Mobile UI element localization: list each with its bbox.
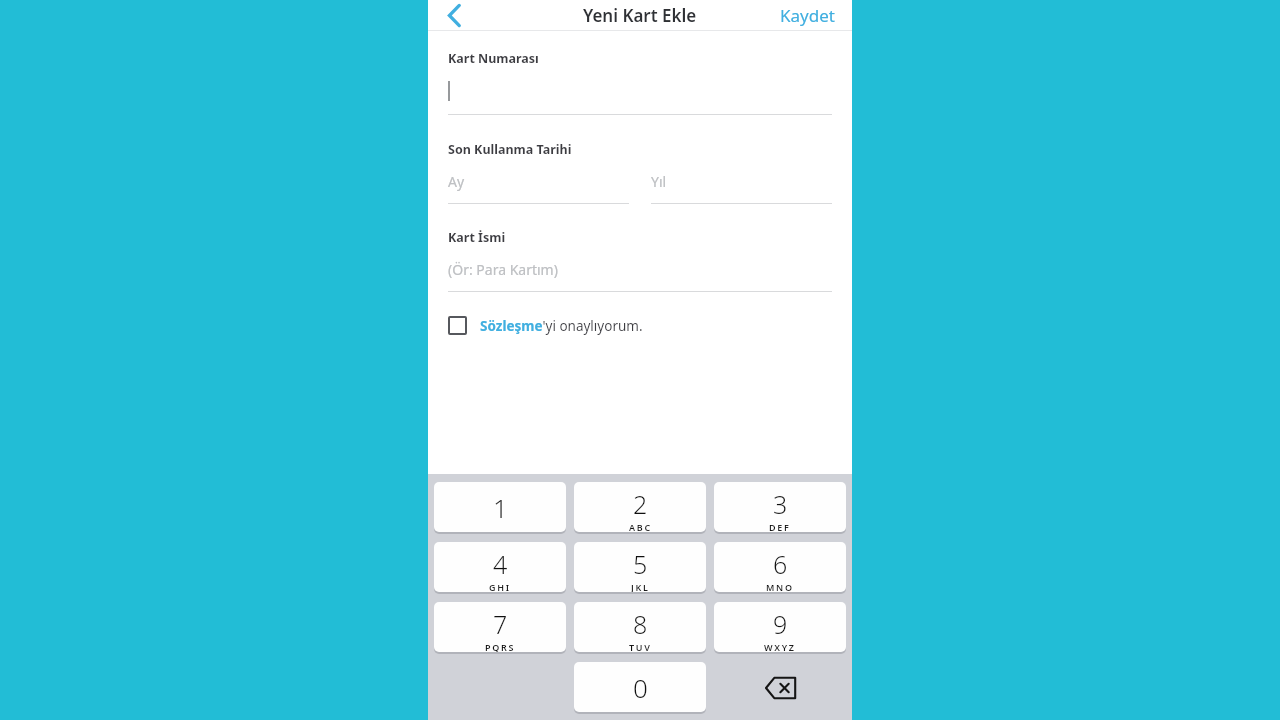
button[interactable]: 4: [434, 542, 566, 592]
staticText: Yıl: [651, 172, 667, 191]
button[interactable]: 9: [714, 602, 846, 652]
button[interactable]: 6: [714, 542, 846, 592]
staticText: 5: [633, 547, 648, 581]
staticText: DEF: [769, 521, 791, 532]
button[interactable]: Yıl: [651, 158, 832, 204]
button[interactable]: Back: [428, 0, 480, 30]
staticText: Yeni Kart Ekle: [583, 4, 697, 27]
staticText: 7: [493, 607, 508, 641]
button[interactable]: 0: [574, 662, 706, 712]
staticText: MNO: [766, 581, 794, 592]
button[interactable]: 7: [434, 602, 566, 652]
staticText: 0: [633, 670, 648, 705]
staticText: 1: [493, 490, 508, 525]
staticText: Ay: [448, 172, 465, 191]
staticText: Sözleşme'yi onaylıyorum.: [480, 317, 643, 335]
staticText: (Ör: Para Kartım): [448, 260, 558, 279]
staticText: PQRS: [485, 641, 516, 652]
staticText: GHI: [489, 581, 511, 592]
button[interactable]: Ay: [448, 158, 629, 204]
button[interactable]: 1: [434, 482, 566, 532]
staticText: WXYZ: [764, 641, 796, 652]
staticText: 2: [633, 487, 648, 521]
staticText: Kaydet: [780, 4, 835, 27]
button[interactable]: Sözleşme'yi onaylıyorum.: [448, 316, 832, 335]
staticText: Kart Numarası: [448, 50, 539, 67]
button[interactable]: 5: [574, 542, 706, 592]
staticText: 4: [493, 547, 508, 581]
button[interactable]: Kaydet: [763, 0, 852, 30]
staticText: TUV: [629, 641, 652, 652]
button[interactable]: [448, 67, 832, 115]
staticText: 3: [773, 487, 788, 521]
staticText: 8: [633, 607, 648, 641]
staticText: Son Kullanma Tarihi: [448, 141, 572, 158]
button[interactable]: (Ör: Para Kartım): [448, 246, 832, 292]
button[interactable]: 8: [574, 602, 706, 652]
button[interactable]: Delete: [714, 662, 846, 714]
staticText: 9: [773, 607, 788, 641]
staticText: ABC: [629, 521, 652, 532]
staticText: JKL: [631, 581, 650, 592]
button[interactable]: 3: [714, 482, 846, 532]
staticText: 6: [773, 547, 788, 581]
button[interactable]: 2: [574, 482, 706, 532]
staticText: Kart İsmi: [448, 229, 506, 246]
